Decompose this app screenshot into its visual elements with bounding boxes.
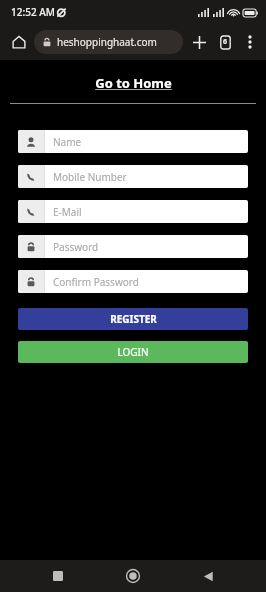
- button[interactable]: Tabs: [212, 29, 238, 55]
- button[interactable]: LOGIN: [18, 341, 248, 363]
- button[interactable]: Home: [6, 29, 32, 55]
- staticText: LOGIN: [117, 345, 149, 359]
- staticText: heshoppinghaat.com: [57, 35, 157, 49]
- button[interactable]: Name: [18, 130, 248, 153]
- staticText: 12:52 AM: [11, 5, 55, 19]
- staticText: Confirm Password: [53, 275, 139, 289]
- staticText: 6: [223, 37, 228, 47]
- button[interactable]: Confirm Password: [18, 270, 248, 293]
- button[interactable]: Go to Home: [95, 74, 172, 92]
- button[interactable]: Mobile Number: [18, 165, 248, 188]
- button[interactable]: More options: [238, 30, 262, 54]
- button[interactable]: New tab: [186, 29, 212, 55]
- staticText: Password: [53, 240, 99, 254]
- button[interactable]: Recent apps: [41, 560, 75, 592]
- staticText: Name: [53, 135, 82, 149]
- button[interactable]: Password: [18, 235, 248, 258]
- button[interactable]: REGISTER: [18, 308, 248, 330]
- staticText: Mobile Number: [53, 170, 127, 184]
- staticText: REGISTER: [110, 312, 157, 326]
- button[interactable]: Back: [191, 560, 225, 592]
- button[interactable]: E-Mail: [18, 200, 248, 223]
- staticText: E-Mail: [53, 205, 82, 219]
- button[interactable]: heshoppinghaat.com: [34, 30, 183, 54]
- button[interactable]: Home: [116, 560, 150, 592]
